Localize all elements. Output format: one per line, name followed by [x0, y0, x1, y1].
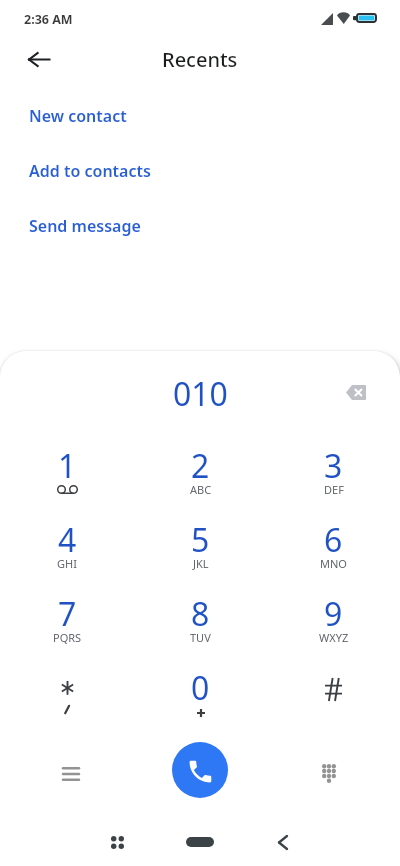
button[interactable]: New contact [0, 88, 400, 143]
staticText: ABC [190, 482, 212, 497]
staticText: Send message [29, 215, 141, 237]
staticText: MNO [320, 556, 347, 571]
button[interactable] [0, 670, 134, 744]
staticText: 9 [324, 592, 343, 636]
button[interactable]: 8 [134, 596, 267, 670]
button[interactable]: 9 [267, 596, 400, 670]
button[interactable]: 0 [134, 670, 267, 744]
staticText: 1 [58, 444, 77, 488]
button[interactable]: 2 [134, 448, 267, 522]
staticText: 010 [173, 372, 228, 416]
staticText: WXYZ [319, 630, 349, 645]
button[interactable]: 3 [267, 448, 400, 522]
button[interactable]: Backspace [334, 370, 378, 414]
staticText: JKL [193, 556, 209, 571]
staticText: DEF [324, 482, 344, 497]
staticText: 0 [191, 666, 210, 710]
button[interactable]: Send message [0, 198, 400, 253]
staticText: 2 [191, 444, 210, 488]
button[interactable]: Home [178, 826, 222, 858]
staticText: 4 [58, 518, 77, 562]
button[interactable]: Add to contacts [0, 143, 400, 198]
staticText: TUV [190, 630, 211, 645]
staticText: 3 [324, 444, 343, 488]
staticText: New contact [29, 105, 127, 127]
button[interactable]: Back [267, 826, 299, 858]
staticText: 8 [191, 592, 210, 636]
staticText: Recents [162, 46, 238, 73]
staticText: PQRS [53, 630, 82, 645]
staticText: 7 [58, 592, 77, 636]
button[interactable]: Dialpad [308, 753, 349, 794]
button[interactable]: 6 [267, 522, 400, 596]
button[interactable]: 1 [0, 448, 134, 522]
staticText: 6 [324, 518, 343, 562]
staticText: GHI [57, 556, 77, 571]
staticText: Add to contacts [29, 160, 151, 182]
button[interactable]: 5 [134, 522, 267, 596]
staticText: 5 [191, 518, 210, 562]
button[interactable]: Recent apps [101, 826, 133, 858]
button[interactable]: Dial assist menu [50, 753, 91, 794]
button[interactable] [267, 670, 400, 744]
staticText: 2:36 AM [24, 11, 73, 28]
button[interactable]: Call [172, 742, 228, 798]
button[interactable]: 7 [0, 596, 134, 670]
button[interactable]: 4 [0, 522, 134, 596]
button[interactable]: Back [14, 37, 62, 85]
